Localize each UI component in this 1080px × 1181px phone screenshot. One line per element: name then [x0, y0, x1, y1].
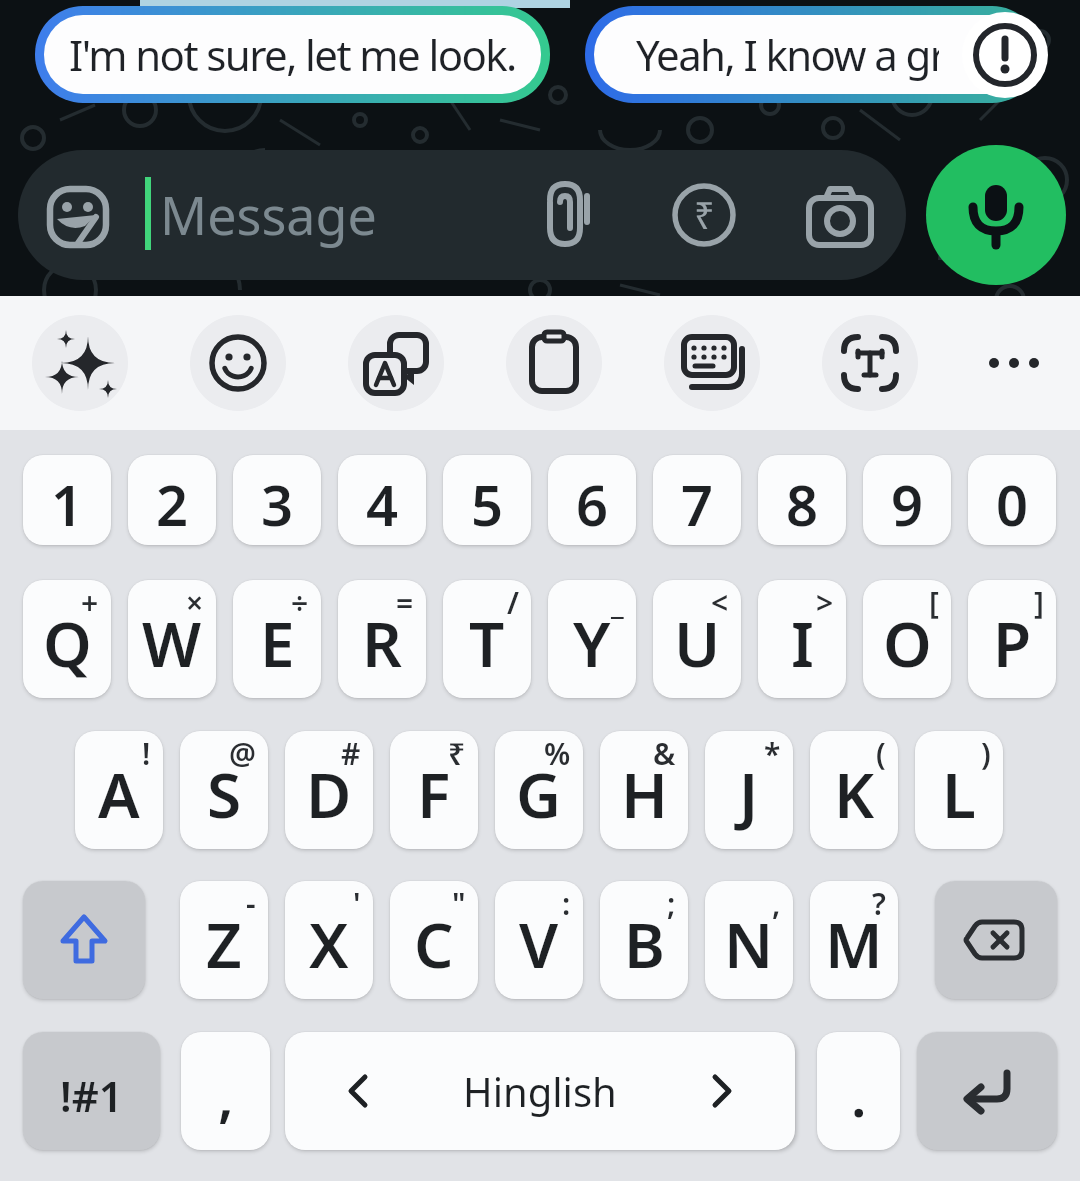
button[interactable]: Hinglish	[285, 1032, 795, 1150]
button[interactable]: D	[285, 731, 373, 849]
button[interactable]: 7	[653, 455, 741, 545]
button[interactable]: 0	[968, 455, 1056, 545]
staticText: O	[883, 601, 932, 685]
button[interactable]: B	[600, 881, 688, 999]
button[interactable]	[935, 881, 1057, 999]
button[interactable]: M	[810, 881, 898, 999]
staticText: Z	[206, 902, 242, 986]
button[interactable]: W	[128, 580, 216, 698]
button[interactable]	[190, 315, 286, 411]
staticText: 0	[996, 466, 1029, 542]
staticText: S	[207, 752, 242, 836]
button[interactable]: L	[915, 731, 1003, 849]
button[interactable]: K	[810, 731, 898, 849]
staticText: Y	[573, 601, 611, 685]
staticText: R	[362, 601, 402, 685]
staticText: ×	[186, 582, 204, 623]
button[interactable]: .	[817, 1032, 900, 1150]
staticText: 3	[261, 466, 294, 542]
staticText: X	[309, 902, 349, 986]
button[interactable]	[23, 881, 145, 999]
button[interactable]: G	[495, 731, 583, 849]
button[interactable]: 3	[233, 455, 321, 545]
staticText: *	[764, 733, 781, 774]
button[interactable]: Z	[180, 881, 268, 999]
staticText: L	[942, 752, 976, 836]
staticText: !#1	[60, 1067, 123, 1124]
staticText: V	[519, 902, 559, 986]
button[interactable]: S	[180, 731, 268, 849]
button[interactable]	[917, 1032, 1057, 1150]
staticText: Yeah, I know a grea	[636, 26, 939, 83]
button[interactable]: 2	[128, 455, 216, 545]
button[interactable]: Y	[548, 580, 636, 698]
button[interactable]: F	[390, 731, 478, 849]
button[interactable]: X	[285, 881, 373, 999]
staticText: T	[469, 601, 505, 685]
button[interactable]: P	[968, 580, 1056, 698]
staticText: _	[611, 582, 624, 623]
button[interactable]: R	[338, 580, 426, 698]
staticText: U	[674, 601, 721, 685]
button[interactable]: 4	[338, 455, 426, 545]
button[interactable]: 9	[863, 455, 951, 545]
button[interactable]	[348, 315, 444, 411]
button[interactable]	[506, 315, 602, 411]
staticText: G	[516, 752, 562, 836]
staticText: (	[876, 733, 886, 774]
button[interactable]: !#1	[23, 1032, 160, 1150]
button[interactable]: E	[233, 580, 321, 698]
button[interactable]	[664, 315, 760, 411]
staticText: 7	[681, 466, 714, 542]
button[interactable]	[18, 150, 906, 280]
staticText: '	[353, 883, 361, 924]
staticText: Hinglish	[463, 1064, 617, 1118]
button[interactable]: T	[443, 580, 531, 698]
button[interactable]: I'm not sure, let me look.	[35, 6, 550, 103]
staticText: ₹	[694, 191, 715, 240]
button[interactable]	[32, 315, 128, 411]
button[interactable]: H	[600, 731, 688, 849]
staticText: >	[816, 582, 834, 623]
staticText: :	[562, 883, 571, 924]
staticText: ]	[1034, 582, 1044, 623]
staticText: [	[929, 582, 939, 623]
button[interactable]: 1	[23, 455, 111, 545]
staticText: "	[452, 883, 466, 924]
button[interactable]: ,	[181, 1032, 270, 1150]
button[interactable]: U	[653, 580, 741, 698]
button[interactable]	[926, 145, 1066, 285]
button[interactable]: O	[863, 580, 951, 698]
button[interactable]: I	[758, 580, 846, 698]
button[interactable]: 5	[443, 455, 531, 545]
button[interactable]: 8	[758, 455, 846, 545]
button[interactable]: J	[705, 731, 793, 849]
staticText: 4	[366, 466, 399, 542]
button[interactable]: ₹	[672, 183, 736, 247]
staticText: I	[791, 601, 814, 685]
button[interactable]: C	[390, 881, 478, 999]
staticText: =	[396, 582, 414, 623]
button[interactable]: 6	[548, 455, 636, 545]
button[interactable]	[962, 12, 1048, 98]
staticText: ,	[218, 1057, 234, 1133]
button[interactable]	[806, 186, 874, 248]
button[interactable]	[546, 182, 590, 248]
staticText: P	[993, 601, 1032, 685]
button[interactable]: Yeah, I know a grea	[585, 6, 1040, 103]
button[interactable]: A	[75, 731, 163, 849]
button[interactable]	[47, 186, 109, 248]
staticText: ÷	[291, 582, 309, 623]
staticText: W	[142, 601, 202, 685]
button[interactable]: V	[495, 881, 583, 999]
button[interactable]	[966, 315, 1062, 411]
button[interactable]: Q	[23, 580, 111, 698]
staticText: D	[306, 752, 352, 836]
staticText: ₹	[448, 733, 466, 774]
staticText: M	[825, 902, 883, 986]
staticText: A	[98, 752, 140, 836]
button[interactable]: N	[705, 881, 793, 999]
button[interactable]	[822, 315, 918, 411]
staticText: &	[653, 733, 676, 774]
staticText: 5	[471, 466, 504, 542]
